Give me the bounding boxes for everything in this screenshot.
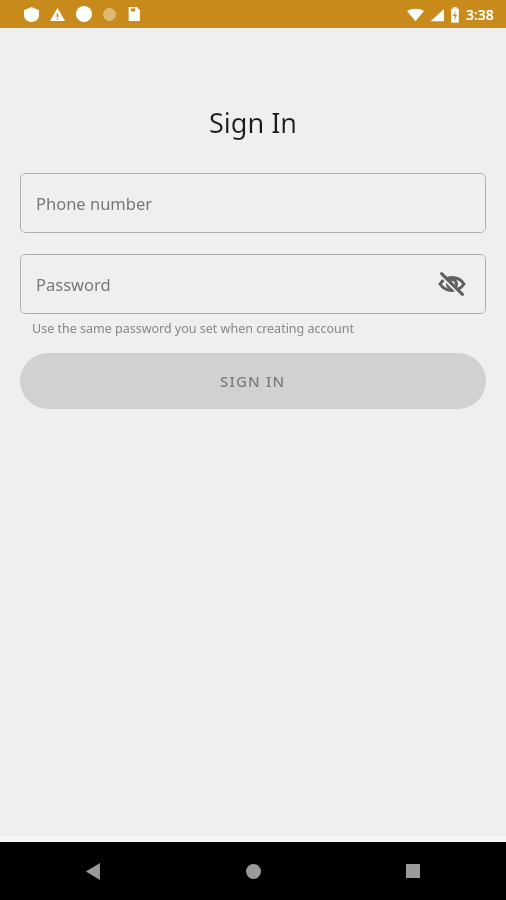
staticText: Phone number [36, 192, 486, 214]
button[interactable]: Home [229, 847, 277, 895]
button[interactable]: Phone number [20, 173, 486, 233]
staticText: Sign In [209, 104, 297, 141]
staticText: SIGN IN [220, 371, 286, 391]
button[interactable]: Password [20, 254, 486, 314]
staticText: Use the same password you set when creat… [32, 320, 355, 337]
button[interactable]: Recent apps [389, 847, 437, 895]
staticText: Password [36, 273, 432, 295]
button[interactable]: Show password [432, 264, 472, 304]
staticText: 3:38 [466, 5, 494, 24]
button[interactable]: Back [69, 847, 117, 895]
button[interactable]: SIGN IN [20, 353, 486, 409]
